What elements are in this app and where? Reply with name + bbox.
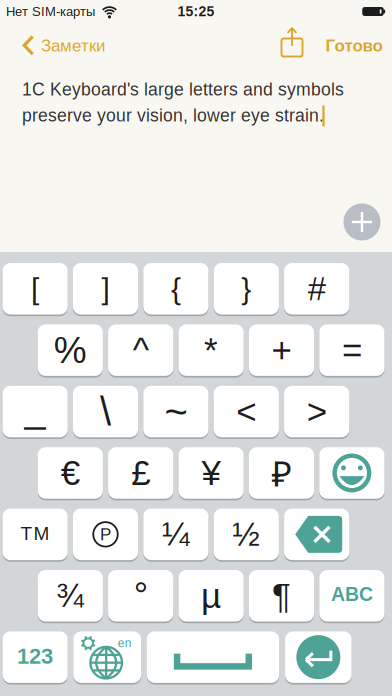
staticText: } [241, 272, 251, 305]
button[interactable]: % [38, 324, 103, 376]
button[interactable]: * [178, 324, 244, 376]
staticText: 1C Keyboard's large letters and symbols [22, 80, 344, 99]
staticText: Нет SIM-карты [6, 4, 95, 19]
staticText: Заметки [41, 36, 105, 55]
button[interactable]: [ [2, 263, 68, 314]
button[interactable]: ½ [214, 509, 279, 560]
button[interactable]: µ [178, 570, 244, 621]
button[interactable]: _ [2, 386, 68, 437]
staticText: ] [101, 272, 109, 305]
button[interactable]: ~ [143, 386, 208, 437]
staticText: > [307, 392, 327, 431]
staticText: { [171, 272, 181, 305]
staticText: ° [134, 576, 148, 616]
staticText: ABC [331, 583, 373, 605]
button[interactable]: Delete [284, 509, 349, 560]
button[interactable]: Share [281, 27, 303, 56]
staticText: £ [131, 453, 150, 492]
staticText: Готово [325, 36, 382, 55]
button[interactable]: ABC [319, 570, 384, 621]
button[interactable]: < [214, 386, 279, 437]
button[interactable]: Return [285, 631, 352, 683]
button[interactable]: € [38, 447, 103, 499]
button[interactable]: 123 [2, 631, 68, 683]
button[interactable]: = [319, 324, 384, 376]
button[interactable]: ¼ [143, 509, 208, 560]
staticText: µ [201, 576, 221, 615]
staticText: [ [31, 272, 39, 305]
staticText: ¥ [202, 453, 221, 492]
staticText: ^ [133, 331, 149, 370]
button[interactable]: } [214, 263, 279, 314]
staticText: preserve your vision, lower eye strain. [22, 106, 324, 125]
staticText: ~ [164, 389, 187, 434]
staticText: TM [21, 523, 50, 544]
button[interactable]: ¥ [178, 447, 244, 499]
staticText: \ [100, 389, 111, 434]
button[interactable]: # [284, 263, 349, 314]
button[interactable]: £ [108, 447, 173, 499]
button[interactable]: ¾ [38, 570, 103, 621]
button[interactable]: ^ [108, 324, 173, 376]
staticText: P [100, 525, 111, 544]
staticText: ¶ [272, 576, 291, 615]
button[interactable]: Back [23, 36, 105, 55]
button[interactable]: ] [73, 263, 138, 314]
staticText: € [61, 453, 80, 492]
staticText: ¾ [56, 577, 84, 614]
button[interactable]: Space [147, 631, 279, 683]
button[interactable]: ¶ [249, 570, 314, 621]
staticText: # [308, 270, 326, 307]
button[interactable]: ℗ [73, 509, 138, 560]
staticText: ½ [232, 516, 260, 553]
staticText: % [54, 329, 87, 371]
staticText: ₽ [271, 449, 291, 497]
button[interactable]: > [284, 386, 349, 437]
staticText: 123 [17, 644, 53, 668]
button[interactable]: { [143, 263, 208, 314]
staticText: = [342, 331, 362, 370]
button[interactable]: Next keyboard [73, 631, 141, 683]
button[interactable]: ° [108, 570, 173, 621]
button[interactable]: Готово [325, 36, 382, 55]
staticText: 15:25 [177, 4, 214, 19]
button[interactable]: + [249, 324, 314, 376]
staticText: * [204, 331, 218, 370]
button[interactable]: ₽ [249, 447, 314, 499]
staticText: en [118, 636, 132, 650]
staticText: ¼ [162, 516, 190, 553]
button[interactable]: \ [73, 386, 138, 437]
staticText: < [236, 392, 256, 431]
button[interactable]: Emoji [319, 447, 384, 499]
staticText: _ [25, 387, 46, 430]
staticText: + [271, 331, 291, 370]
button[interactable]: TM [2, 509, 68, 560]
button[interactable]: Add [343, 203, 380, 240]
